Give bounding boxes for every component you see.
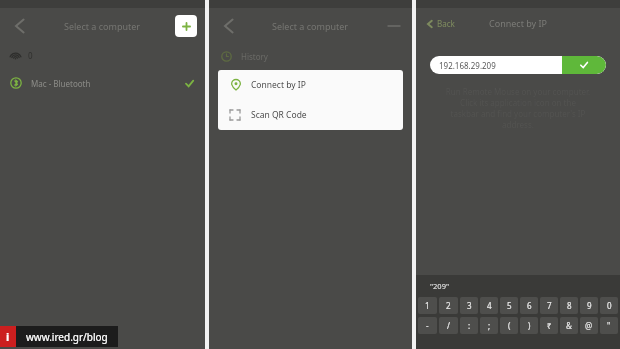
staticText: :: [468, 320, 471, 331]
staticText: Select a computer: [272, 20, 349, 32]
staticText: Connect by IP: [251, 79, 306, 91]
button[interactable]: ₹: [540, 317, 558, 334]
button[interactable]: Connect: [562, 56, 606, 74]
button[interactable]: History: [209, 44, 412, 68]
staticText: Connect by IP: [489, 17, 548, 29]
button[interactable]: /: [439, 317, 458, 334]
staticText: ": [607, 320, 611, 331]
button[interactable]: Back: [219, 16, 239, 36]
button[interactable]: &: [560, 317, 578, 334]
button[interactable]: 4: [480, 297, 498, 314]
staticText: "209": [430, 281, 449, 291]
button[interactable]: 1: [418, 297, 437, 314]
button[interactable]: 5: [500, 297, 518, 314]
button[interactable]: @: [580, 317, 598, 334]
button[interactable]: 6: [520, 297, 538, 314]
button[interactable]: Connect by IP: [218, 70, 403, 100]
staticText: Scan QR Code: [251, 109, 307, 121]
staticText: 192.168.29.209: [439, 60, 496, 71]
button[interactable]: Scan QR Code: [218, 100, 403, 130]
staticText: www.ired.gr/blog: [26, 330, 108, 344]
staticText: 4: [487, 300, 492, 311]
button[interactable]: ": [600, 317, 618, 334]
staticText: ;: [488, 320, 491, 331]
staticText: Mac - Bluetooth: [31, 78, 184, 89]
staticText: 0: [28, 50, 33, 61]
staticText: 7: [547, 300, 552, 311]
button[interactable]: -: [418, 317, 437, 334]
staticText: (: [508, 320, 511, 331]
button[interactable]: More options: [386, 18, 402, 34]
staticText: History: [241, 51, 268, 62]
staticText: ): [528, 320, 531, 331]
button[interactable]: Back: [10, 16, 30, 36]
button[interactable]: 2: [439, 297, 458, 314]
button[interactable]: Mac - Bluetooth: [0, 72, 205, 94]
staticText: ₹: [547, 320, 552, 331]
button[interactable]: 3: [460, 297, 478, 314]
button[interactable]: 8: [560, 297, 578, 314]
staticText: 9: [587, 300, 592, 311]
staticText: 0: [607, 300, 612, 311]
staticText: &: [566, 320, 572, 331]
button[interactable]: (: [500, 317, 518, 334]
staticText: 8: [567, 300, 572, 311]
staticText: 5: [507, 300, 512, 311]
button[interactable]: :: [460, 317, 478, 334]
staticText: Back: [437, 18, 455, 29]
button[interactable]: 0: [600, 297, 618, 314]
button[interactable]: Back: [422, 16, 458, 31]
staticText: 2: [446, 300, 451, 311]
staticText: /: [447, 320, 450, 331]
button[interactable]: 9: [580, 297, 598, 314]
staticText: 6: [527, 300, 532, 311]
button[interactable]: ): [520, 317, 538, 334]
staticText: i: [6, 329, 10, 344]
staticText: 1: [425, 300, 430, 311]
staticText: Select a computer: [64, 20, 141, 32]
staticText: @: [585, 320, 593, 331]
button[interactable]: 7: [540, 297, 558, 314]
button[interactable]: Add computer: [175, 15, 197, 37]
staticText: -: [426, 320, 429, 331]
button[interactable]: ;: [480, 317, 498, 334]
staticText: 3: [467, 300, 472, 311]
